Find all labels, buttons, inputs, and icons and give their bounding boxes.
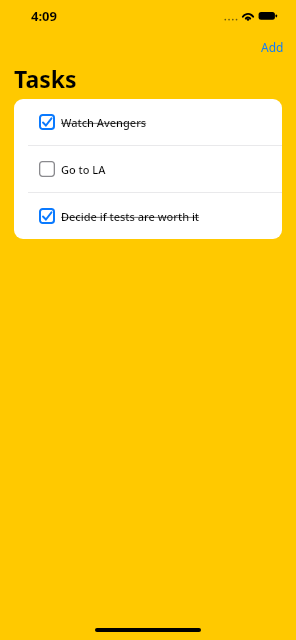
staticText: Go to LA — [61, 162, 106, 177]
button[interactable]: Add task — [251, 36, 296, 60]
button[interactable]: Decide if tests are worth it — [14, 193, 282, 239]
staticText: Tasks — [14, 63, 77, 94]
button[interactable]: Watch Avengers — [14, 99, 282, 145]
button[interactable]: Go to LA — [14, 146, 282, 192]
staticText: 4:09 — [31, 7, 57, 25]
staticText: Watch Avengers — [61, 115, 147, 130]
staticText: Add — [261, 39, 284, 55]
staticText: Decide if tests are worth it — [61, 209, 200, 224]
